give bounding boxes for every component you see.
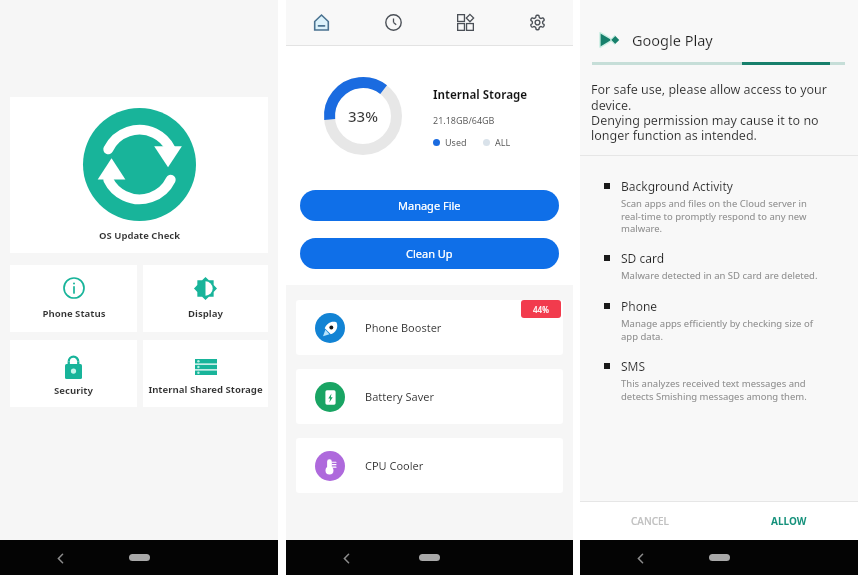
staticText: 33%: [348, 106, 378, 126]
button[interactable]: OS Update Check: [10, 97, 268, 253]
staticText: Manage File: [398, 198, 461, 213]
staticText: ALLOW: [771, 514, 807, 528]
button[interactable]: Phone Status: [10, 265, 137, 332]
button[interactable]: Battery Saver: [296, 369, 563, 424]
staticText: Internal Shared Storage: [148, 383, 263, 396]
staticText: CPU Cooler: [365, 458, 424, 473]
staticText: Used: [445, 136, 467, 148]
staticText: Phone Status: [42, 307, 106, 320]
staticText: Internal Storage: [433, 87, 528, 103]
button[interactable]: Home: [419, 554, 440, 561]
staticText: ALL: [495, 136, 511, 148]
button[interactable]: Home: [129, 554, 150, 561]
staticText: Security: [54, 384, 93, 397]
staticText: Clean Up: [406, 246, 453, 261]
button[interactable]: Settings: [501, 0, 573, 45]
button[interactable]: ALLOW: [719, 502, 858, 540]
button[interactable]: CANCEL: [580, 502, 719, 540]
button[interactable]: Security: [10, 340, 137, 407]
button[interactable]: Manage File: [300, 190, 559, 221]
staticText: Malware detected in an SD card are delet…: [621, 269, 818, 282]
button[interactable]: Apps: [429, 0, 501, 45]
staticText: Background Activity: [621, 178, 733, 194]
staticText: Scan apps and files on the Cloud server …: [621, 197, 807, 234]
staticText: CANCEL: [631, 514, 669, 528]
button[interactable]: Display: [143, 265, 268, 332]
staticText: OS Update Check: [99, 229, 181, 242]
staticText: SD card: [621, 250, 665, 266]
staticText: This analyzes received text messages and…: [621, 377, 807, 402]
staticText: Display: [188, 307, 223, 320]
button[interactable]: Home: [286, 0, 357, 45]
staticText: For safe use, please allow access to you…: [591, 81, 827, 143]
button[interactable]: Clean Up: [300, 238, 559, 269]
staticText: Manage apps efficiently by checking size…: [621, 317, 813, 342]
button[interactable]: History: [357, 0, 429, 45]
button[interactable]: Phone Booster: [296, 300, 563, 355]
staticText: Phone: [621, 298, 658, 314]
button[interactable]: CPU Cooler: [296, 438, 563, 493]
staticText: SMS: [621, 358, 646, 374]
button[interactable]: Home: [709, 554, 730, 561]
staticText: Phone Booster: [365, 320, 442, 335]
button[interactable]: Back: [49, 547, 71, 569]
staticText: 44%: [533, 304, 549, 315]
staticText: Google Play: [632, 30, 713, 50]
button[interactable]: Back: [335, 547, 357, 569]
button[interactable]: Internal Shared Storage: [143, 340, 268, 407]
staticText: Battery Saver: [365, 389, 435, 404]
button[interactable]: Back: [629, 547, 651, 569]
staticText: 21.18GB/64GB: [433, 114, 495, 126]
